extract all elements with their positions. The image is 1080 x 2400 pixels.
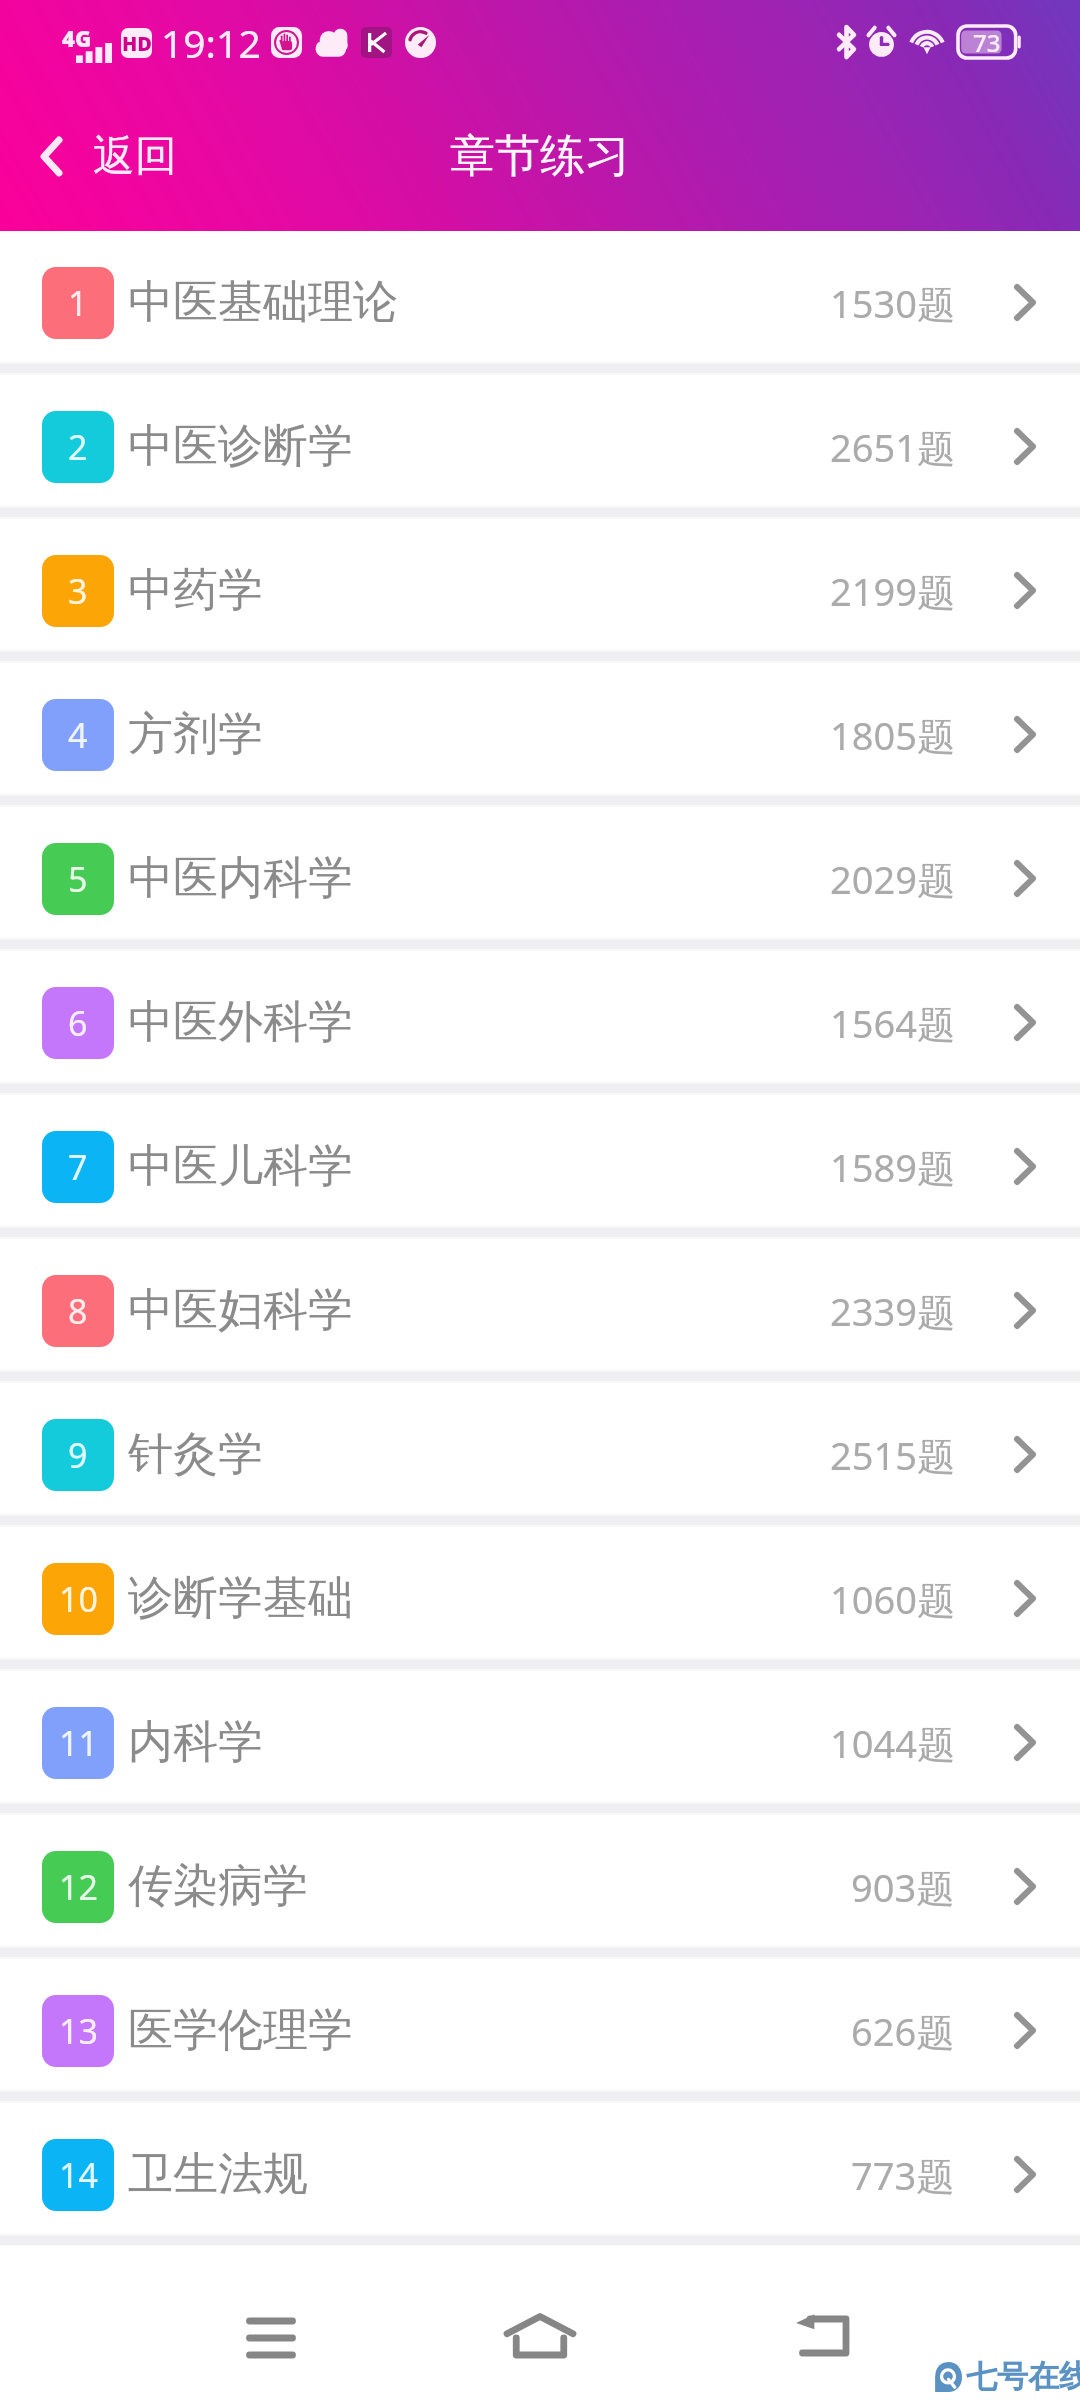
button[interactable]: 1 <box>0 231 1080 362</box>
staticText: 返回 <box>93 130 177 183</box>
staticText: 11 <box>59 1720 98 1766</box>
button[interactable]: 12 <box>0 1815 1080 1946</box>
staticText: 4 <box>68 712 88 758</box>
staticText: 1530题 <box>830 277 955 329</box>
staticText: 中医儿科学 <box>128 1138 353 1195</box>
staticText: 中医内科学 <box>128 850 353 907</box>
button[interactable]: 6 <box>0 951 1080 1082</box>
staticText: 7 <box>68 1144 88 1190</box>
staticText: 诊断学基础 <box>128 1570 353 1627</box>
button[interactable]: 4 <box>0 663 1080 794</box>
button[interactable]: 8 <box>0 1239 1080 1370</box>
button[interactable]: 14 <box>0 2103 1080 2234</box>
staticText: 针灸学 <box>128 1426 263 1483</box>
staticText: 626题 <box>851 2005 955 2057</box>
button[interactable]: Back <box>758 2271 888 2400</box>
staticText: 七号在线 <box>966 2357 1080 2396</box>
staticText: 3 <box>68 568 88 614</box>
staticText: 1805题 <box>830 709 955 761</box>
staticText: 2651题 <box>830 421 955 473</box>
staticText: 内科学 <box>128 1714 263 1771</box>
staticText: 2 <box>68 424 88 470</box>
staticText: 2029题 <box>830 853 955 905</box>
button[interactable]: 7 <box>0 1095 1080 1226</box>
staticText: 4G <box>62 23 92 53</box>
staticText: 6 <box>68 1000 88 1046</box>
staticText: 2199题 <box>830 565 955 617</box>
staticText: 中医妇科学 <box>128 1282 353 1339</box>
staticText: 中药学 <box>128 562 263 619</box>
staticText: 中医外科学 <box>128 994 353 1051</box>
staticText: 10 <box>59 1576 98 1622</box>
staticText: 1044题 <box>830 1717 955 1769</box>
staticText: 1589题 <box>830 1141 955 1193</box>
staticText: 5 <box>68 856 88 902</box>
staticText: 方剂学 <box>128 706 263 763</box>
button[interactable]: 13 <box>0 1959 1080 2090</box>
staticText: 9 <box>68 1432 88 1478</box>
staticText: 19:12 <box>161 16 261 69</box>
staticText: 2339题 <box>830 1285 955 1337</box>
button[interactable]: 返回 <box>0 86 199 226</box>
button[interactable]: Home <box>475 2271 605 2400</box>
button[interactable]: 9 <box>0 1383 1080 1514</box>
staticText: 1 <box>68 280 88 326</box>
button[interactable]: 2 <box>0 375 1080 506</box>
staticText: 传染病学 <box>128 1858 308 1915</box>
button[interactable]: Menu <box>206 2271 336 2400</box>
button[interactable]: 11 <box>0 1671 1080 1802</box>
staticText: 14 <box>59 2152 98 2198</box>
staticText: 1564题 <box>830 997 955 1049</box>
staticText: 773题 <box>851 2149 955 2201</box>
staticText: 中医诊断学 <box>128 418 353 475</box>
staticText: 903题 <box>851 1861 955 1913</box>
staticText: 8 <box>68 1288 88 1334</box>
staticText: 13 <box>59 2008 98 2054</box>
button[interactable]: 10 <box>0 1527 1080 1658</box>
staticText: 2515题 <box>830 1429 955 1481</box>
staticText: 1060题 <box>830 1573 955 1625</box>
staticText: 章节练习 <box>450 128 630 185</box>
staticText: 中医基础理论 <box>128 274 398 331</box>
staticText: 医学伦理学 <box>128 2002 353 2059</box>
staticText: 卫生法规 <box>128 2146 308 2203</box>
staticText: 73 <box>973 26 1001 58</box>
staticText: HD <box>122 30 152 57</box>
staticText: 12 <box>59 1864 98 1910</box>
button[interactable]: 3 <box>0 519 1080 650</box>
button[interactable]: 5 <box>0 807 1080 938</box>
